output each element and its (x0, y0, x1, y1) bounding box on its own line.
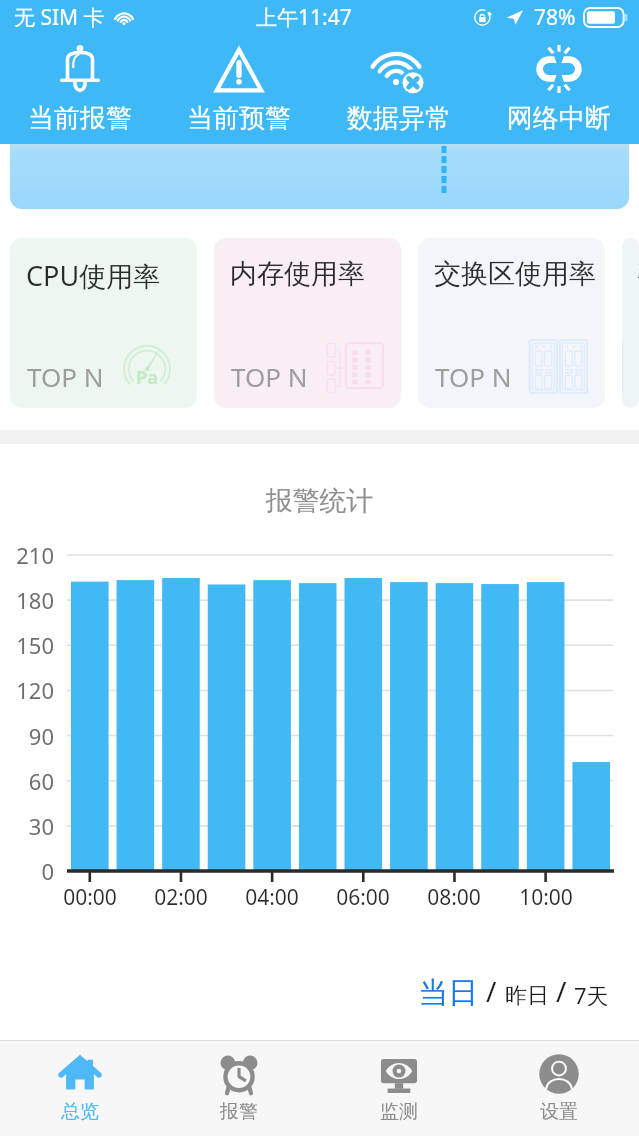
staticText: 监测 (380, 1100, 418, 1124)
button[interactable]: 交换区使用率 (418, 238, 605, 408)
staticText: 10:00 (491, 883, 601, 912)
other: 当前报警 (55, 44, 105, 94)
other: 网络中断 (534, 44, 584, 94)
staticText: 数据异常 (347, 102, 451, 135)
staticText: 0 (0, 856, 54, 886)
button[interactable]: 昨日 (505, 982, 549, 1010)
button[interactable]: 7天 (574, 980, 609, 1010)
staticText: CPU使用率 (26, 257, 161, 294)
staticText: 150 (0, 630, 54, 660)
button[interactable]: 磁盘使用率 (622, 238, 639, 408)
staticText: 当前报警 (28, 102, 132, 135)
staticText: 交换区使用率 (434, 257, 596, 291)
staticText: 30 (0, 811, 54, 841)
other: 数据异常 (374, 44, 424, 94)
staticText: 内存使用率 (230, 257, 365, 291)
button[interactable]: 数据异常 (319, 44, 479, 135)
button[interactable]: 内存使用率 (214, 238, 401, 408)
other: 当前预警 (214, 44, 264, 94)
staticText: / (486, 972, 497, 1010)
staticText: 180 (0, 585, 54, 615)
button[interactable]: 当日 (418, 974, 478, 1012)
button[interactable] (10, 144, 629, 209)
staticText: 08:00 (399, 883, 509, 912)
button[interactable]: 总览 (0, 1041, 159, 1136)
staticText: 设置 (540, 1100, 578, 1124)
staticText: 90 (0, 721, 54, 751)
staticText: 总览 (61, 1100, 99, 1124)
button[interactable]: CPU使用率 (10, 238, 197, 408)
button[interactable]: 设置 (479, 1041, 639, 1136)
staticText: 78% (534, 3, 576, 32)
staticText: 210 (0, 540, 54, 570)
button[interactable]: 网络中断 (479, 44, 639, 135)
button[interactable]: 当前预警 (159, 44, 319, 135)
staticText: 无 SIM 卡 (14, 3, 105, 32)
button[interactable]: 报警 (159, 1041, 319, 1136)
staticText: / (556, 972, 567, 1010)
staticText: 06:00 (308, 883, 418, 912)
staticText: 02:00 (126, 883, 236, 912)
staticText: TOP N (27, 359, 104, 394)
staticText: 报警统计 (0, 484, 639, 518)
button[interactable]: 当前报警 (0, 44, 159, 135)
staticText: 报警 (220, 1100, 258, 1124)
staticText: 网络中断 (507, 102, 611, 135)
staticText: 00:00 (35, 883, 145, 912)
staticText: 上午11:47 (256, 3, 352, 32)
staticText: 120 (0, 675, 54, 705)
staticText: 当前预警 (187, 102, 291, 135)
staticText: Pa (136, 365, 158, 390)
button[interactable]: 监测 (319, 1041, 479, 1136)
staticText: 04:00 (217, 883, 327, 912)
staticText: TOP N (231, 359, 308, 394)
staticText: 磁盘使用率 (638, 257, 639, 291)
staticText: TOP N (435, 359, 512, 394)
staticText: 60 (0, 766, 54, 796)
